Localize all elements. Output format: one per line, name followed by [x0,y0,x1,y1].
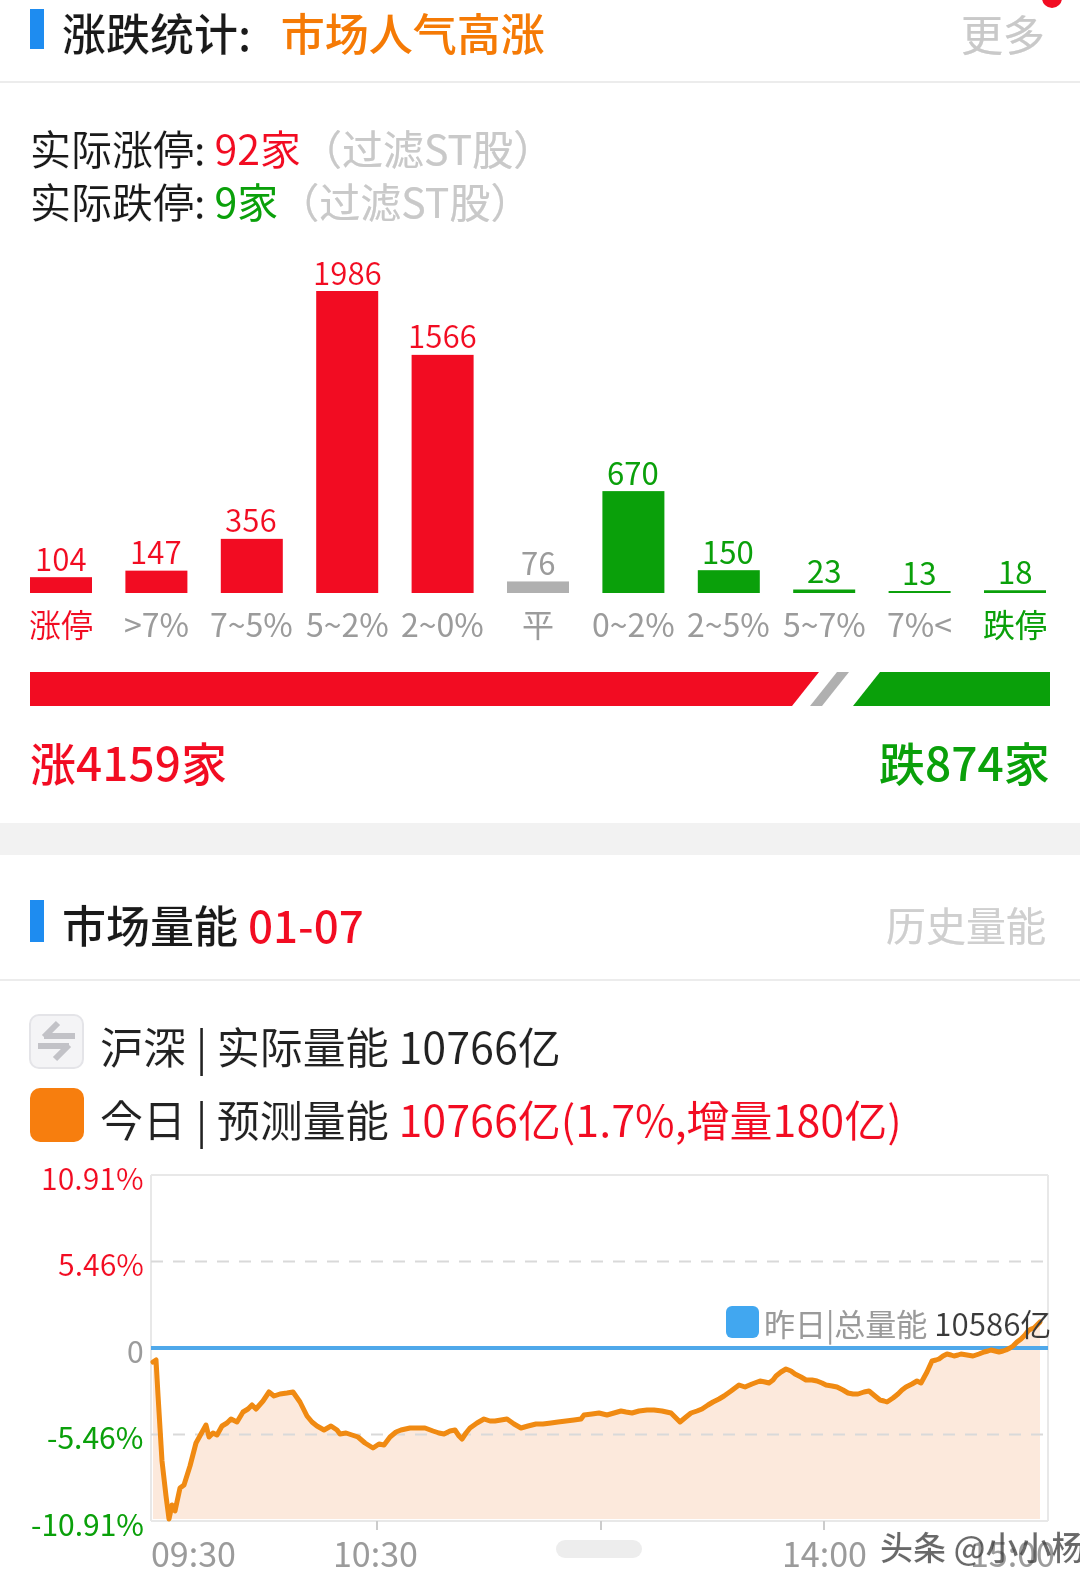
staticText: 0 [127,1328,144,1371]
staticText: 5.46% [58,1241,144,1284]
staticText: 1986 [313,249,382,294]
staticText: 150 [702,528,754,573]
staticText: -5.46% [47,1414,144,1457]
staticText: 沪深 | 实际量能 10766亿 [100,1014,561,1076]
staticText: 13 [902,549,937,594]
staticText: 昨日|总量能 10586亿 [764,1300,1052,1345]
staticText: 10.91% [41,1155,144,1198]
staticText: 23 [807,547,842,592]
staticText: 涨停 [29,600,94,646]
staticText: 更多 [961,2,1046,63]
staticText: 15:00 [970,1528,1055,1577]
staticText: 5~2% [306,600,389,646]
button[interactable]: 更多 [926,2,1046,63]
button[interactable]: 历史量能 [846,895,1046,953]
staticText: 5~7% [783,600,866,646]
staticText: 0~2% [592,600,675,646]
staticText: 1566 [408,312,477,357]
staticText: 跌874家 [879,728,1050,795]
staticText: 2~5% [687,600,770,646]
staticText: 09:30 [151,1528,236,1577]
staticText: 7%< [887,600,952,646]
staticText: 平 [522,600,555,646]
staticText: -10.91% [31,1501,144,1544]
staticText: 670 [607,449,659,494]
staticText: 实际跌停: 9家（过滤ST股） [30,170,532,229]
staticText: 历史量能 [886,895,1046,953]
staticText: 147 [130,528,182,573]
staticText: 涨4159家 [30,728,227,795]
staticText: 104 [35,535,87,580]
staticText: 7~5% [210,600,293,646]
staticText: 头条 @小小杨 [880,1522,1080,1570]
staticText: 跌停 [983,600,1048,646]
staticText: 18 [998,548,1033,593]
staticText: 实际涨停: 92家（过滤ST股） [30,117,555,176]
staticText: 14:00 [782,1528,867,1577]
staticText: 2~0% [401,600,484,646]
staticText: 涨跌统计: 市场人气高涨 [62,0,545,64]
staticText: 356 [225,496,277,541]
staticText: >7% [124,600,189,646]
staticText: 10:30 [333,1528,418,1577]
staticText: 市场量能 01-07 [62,892,364,956]
staticText: 76 [521,539,556,584]
staticText: 今日 | 预测量能 10766亿(1.7%,增量180亿) [100,1087,902,1149]
